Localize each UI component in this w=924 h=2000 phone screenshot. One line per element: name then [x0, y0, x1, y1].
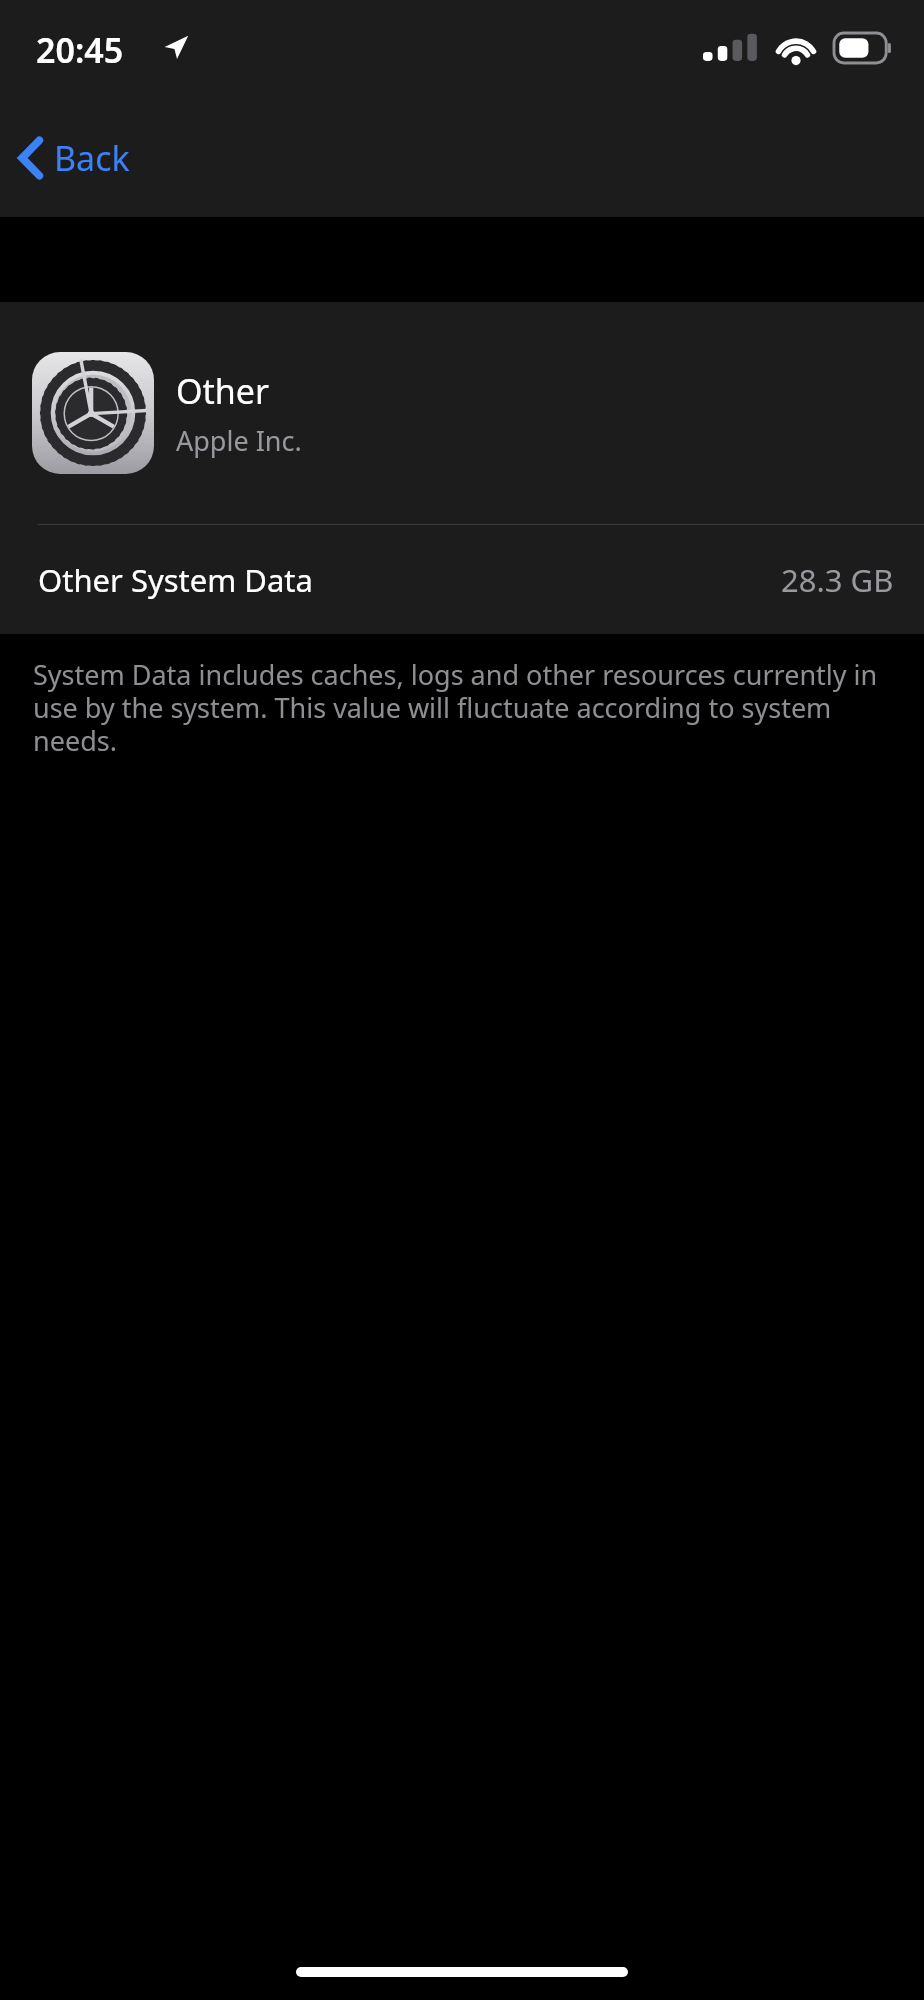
staticText: Back — [54, 135, 130, 181]
staticText: 28.3 GB — [781, 559, 894, 601]
button[interactable]: Other — [0, 302, 924, 524]
staticText: Other — [176, 368, 270, 414]
staticText: Other System Data — [38, 559, 313, 601]
button[interactable]: Back — [10, 127, 146, 189]
other: Back — [18, 136, 44, 180]
button[interactable]: Other System Data — [0, 525, 924, 634]
staticText: System Data includes caches, logs and ot… — [33, 656, 894, 759]
staticText: Apple Inc. — [176, 422, 302, 459]
staticText: 20:45 — [36, 27, 124, 73]
